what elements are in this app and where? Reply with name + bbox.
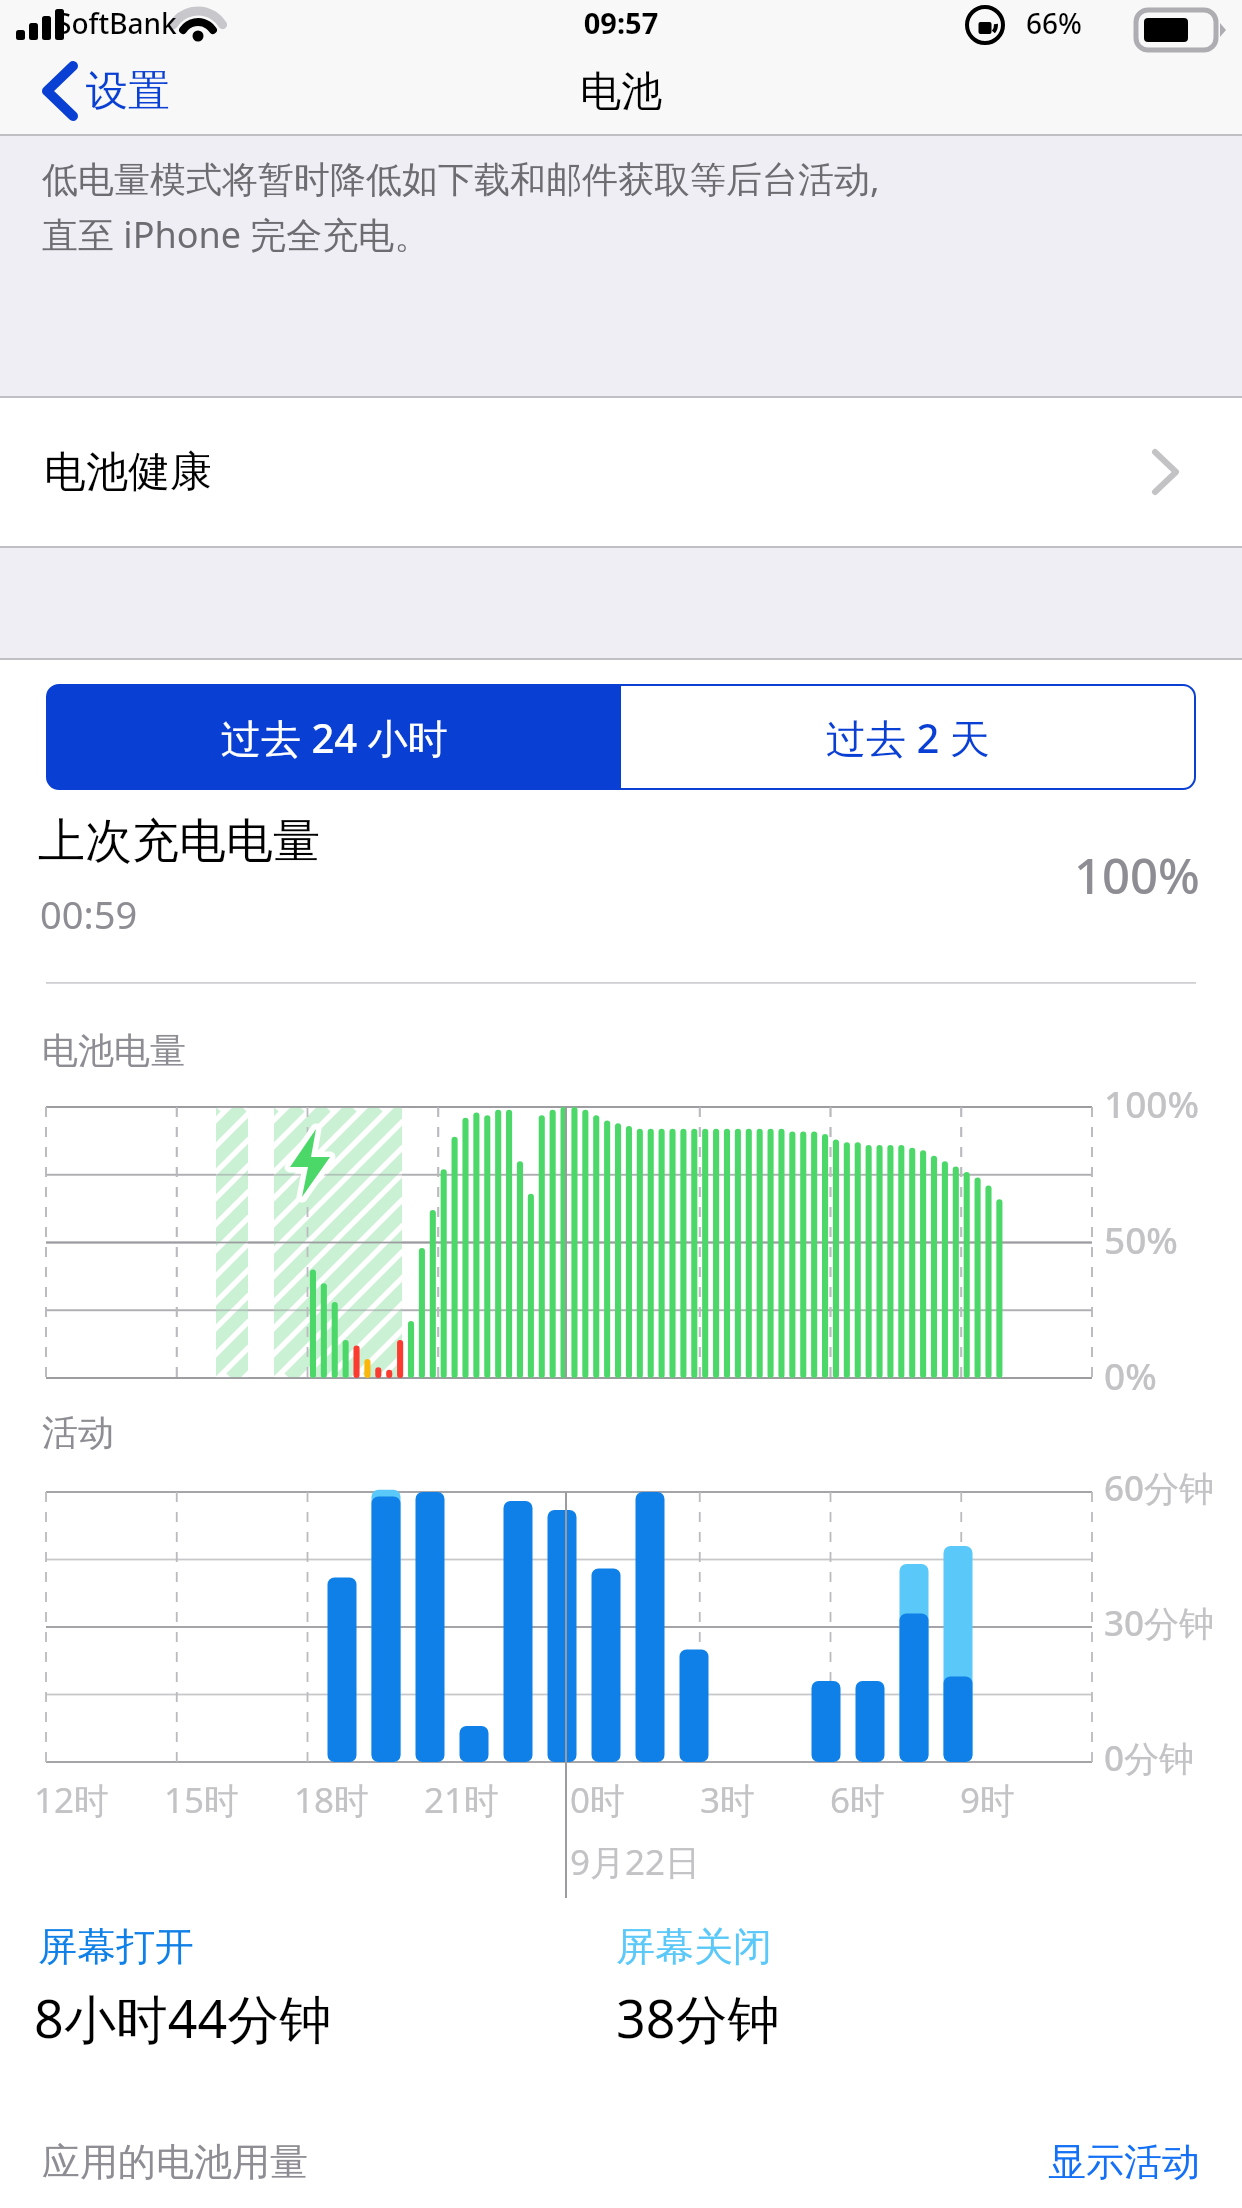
staticText: 50% <box>1104 1214 1178 1264</box>
staticText: 过去 24 小时 <box>221 710 448 765</box>
staticText: 电池电量 <box>42 1028 186 1073</box>
staticText: 9月22日 <box>570 1838 701 1886</box>
staticText: 8小时44分钟 <box>34 1982 332 2053</box>
button[interactable]: 过去 2 天 <box>621 686 1194 788</box>
staticText: 过去 2 天 <box>826 710 990 765</box>
staticText: 30分钟 <box>1104 1599 1215 1647</box>
staticText: 15时 <box>164 1776 240 1824</box>
button[interactable]: 显示活动 <box>1022 2122 1242 2202</box>
staticText: 电池健康 <box>44 446 212 499</box>
staticText: 屏幕打开 <box>38 1922 194 1971</box>
staticText: 应用的电池用量 <box>42 2138 308 2186</box>
staticText: 屏幕关闭 <box>616 1922 772 1971</box>
staticText: 3时 <box>700 1776 756 1824</box>
staticText: 12时 <box>34 1776 110 1824</box>
staticText: 38分钟 <box>616 1982 780 2053</box>
staticText: 活动 <box>42 1410 114 1455</box>
staticText: 0分钟 <box>1104 1734 1195 1782</box>
staticText: 显示活动 <box>1048 2138 1200 2186</box>
staticText: 66% <box>1026 4 1082 42</box>
staticText: 0% <box>1104 1350 1157 1400</box>
staticText: 设置 <box>86 65 170 118</box>
button[interactable]: 过去 24 小时 <box>48 686 621 788</box>
staticText: 09:57 <box>0 3 1242 42</box>
button[interactable]: 设置 <box>18 48 184 134</box>
staticText: 00:59 <box>40 888 138 940</box>
staticText: 18时 <box>294 1776 370 1824</box>
staticText: 21时 <box>424 1776 500 1824</box>
staticText: 60分钟 <box>1104 1464 1215 1512</box>
staticText: 低电量模式将暂时降低如下载和邮件获取等后台活动, 直至 iPhone 完全充电。 <box>42 154 1217 259</box>
staticText: 6时 <box>830 1776 886 1824</box>
staticText: 100% <box>1074 842 1200 909</box>
staticText: 9时 <box>960 1776 1016 1824</box>
staticText: 上次充电电量 <box>38 812 320 871</box>
button[interactable]: 电池健康 <box>0 399 1242 546</box>
staticText: 0时 <box>570 1776 626 1824</box>
staticText: 100% <box>1104 1078 1200 1128</box>
staticText: SoftBank <box>56 4 177 42</box>
staticText: 电池 <box>580 66 662 118</box>
